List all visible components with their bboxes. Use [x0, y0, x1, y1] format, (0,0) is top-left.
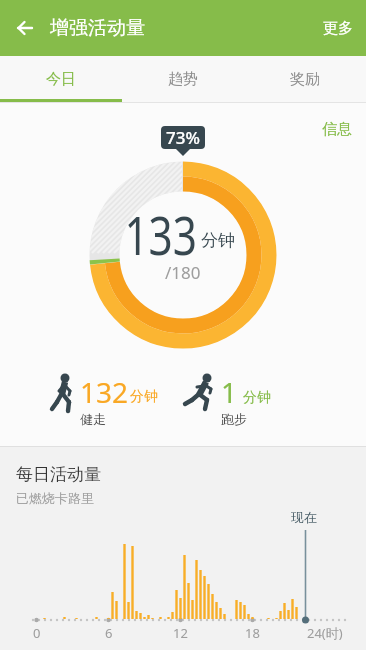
button[interactable]: 132 — [51, 373, 158, 427]
button[interactable]: 趋势 — [122, 56, 244, 102]
staticText: 已燃烧卡路里 — [16, 490, 94, 506]
staticText: 分钟 — [201, 230, 235, 251]
button[interactable]: 1 — [183, 373, 271, 427]
staticText: 分钟 — [243, 389, 271, 407]
button[interactable] — [0, 0, 50, 56]
staticText: 健走 — [80, 411, 106, 427]
staticText: 12 — [173, 624, 188, 642]
button[interactable]: 信息 — [322, 103, 366, 139]
button[interactable]: 每日活动量 — [0, 446, 366, 650]
staticText: 奖励 — [290, 70, 320, 89]
staticText: 0 — [33, 624, 41, 642]
staticText: 现在 — [291, 509, 317, 525]
staticText: 分钟 — [130, 388, 158, 406]
staticText: 趋势 — [168, 70, 198, 89]
staticText: 133 — [124, 199, 197, 270]
staticText: 18 — [245, 624, 260, 642]
button[interactable]: 更多 — [310, 0, 366, 56]
staticText: 信息 — [322, 120, 352, 139]
staticText: 73% — [166, 126, 200, 149]
staticText: 每日活动量 — [16, 464, 101, 485]
button[interactable]: 今日 — [0, 56, 122, 102]
staticText: 增强活动量 — [50, 16, 145, 40]
staticText: 更多 — [323, 19, 353, 38]
staticText: 1 — [221, 373, 238, 411]
staticText: 132 — [80, 373, 129, 411]
staticText: /180 — [165, 261, 201, 284]
staticText: 今日 — [46, 70, 76, 89]
staticText: 跑步 — [221, 411, 247, 427]
button[interactable]: 奖励 — [244, 56, 366, 102]
staticText: 6 — [105, 624, 113, 642]
staticText: 24(时) — [307, 624, 343, 642]
